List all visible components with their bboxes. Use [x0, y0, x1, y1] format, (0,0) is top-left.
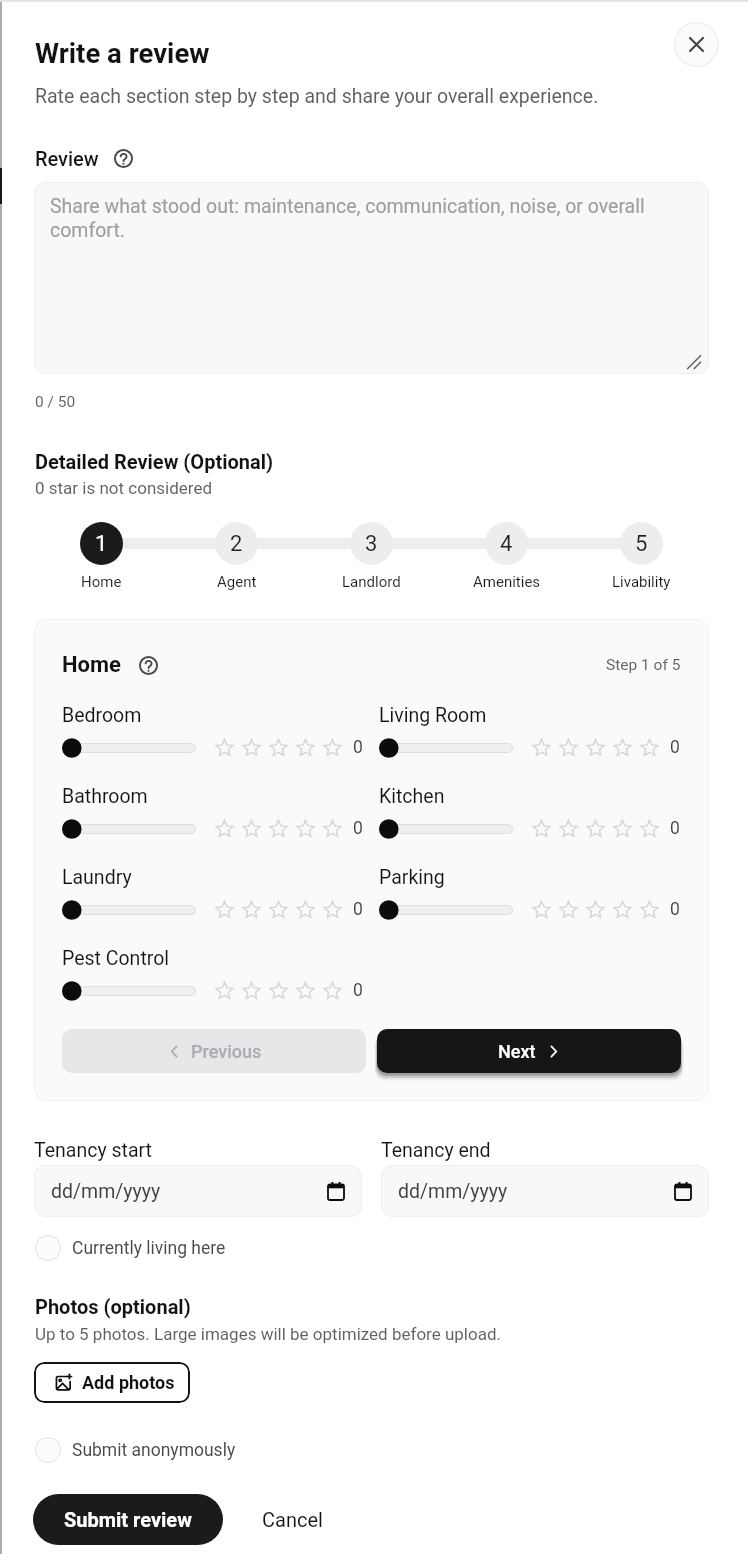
button[interactable]: Rate 1 stars [215, 900, 234, 919]
button[interactable]: Rate 2 stars [242, 819, 261, 838]
button[interactable]: Rate 1 stars [215, 738, 234, 757]
staticText: 0 [670, 737, 680, 758]
button[interactable]: Cancel [246, 1496, 339, 1543]
button[interactable]: Rate 3 stars [269, 738, 288, 757]
staticText: Agent [217, 573, 257, 591]
staticText: Previous [191, 1041, 262, 1062]
other: Pick date [674, 1182, 692, 1200]
button[interactable]: 3 [304, 522, 439, 591]
button[interactable]: Rate 4 stars [296, 738, 315, 757]
button[interactable]: Add photos [34, 1362, 190, 1403]
other: Pick date [327, 1182, 345, 1200]
button[interactable]: Rating slider [62, 819, 196, 839]
button[interactable]: Rating slider [379, 900, 513, 920]
button[interactable]: dd/mm/yyyy [381, 1165, 709, 1217]
button[interactable]: Next [377, 1029, 681, 1073]
button[interactable]: Rate 2 stars [559, 900, 578, 919]
button[interactable]: Rate 3 stars [586, 819, 605, 838]
staticText: 1 [95, 531, 108, 557]
staticText: Up to 5 photos. Large images will be opt… [35, 1324, 501, 1344]
button[interactable]: Rate 4 stars [296, 900, 315, 919]
button[interactable]: Rating slider [379, 738, 513, 758]
button[interactable]: Rate 1 stars [215, 981, 234, 1000]
staticText: Livability [612, 573, 671, 591]
staticText: Tenancy start [34, 1139, 152, 1162]
button[interactable]: Rate 5 stars [640, 900, 659, 919]
staticText: 2 [230, 531, 243, 557]
button[interactable]: Rate 2 stars [559, 819, 578, 838]
staticText: Home [62, 652, 121, 678]
staticText: Step 1 of 5 [606, 656, 681, 674]
staticText: Amenities [473, 573, 541, 591]
staticText: Review [35, 147, 99, 170]
button[interactable]: Rate 2 stars [242, 981, 261, 1000]
staticText: Photos (optional) [35, 1295, 191, 1318]
button[interactable]: Rate 5 stars [323, 819, 342, 838]
button[interactable]: Rate 1 stars [532, 900, 551, 919]
staticText: 0 [670, 818, 680, 839]
button[interactable]: Rate 4 stars [613, 900, 632, 919]
button[interactable]: dd/mm/yyyy [34, 1165, 362, 1217]
staticText: Add photos [82, 1372, 175, 1393]
staticText: 0 [353, 980, 363, 1001]
button[interactable]: Rate 5 stars [640, 738, 659, 757]
button[interactable]: Rate 5 stars [323, 738, 342, 757]
staticText: 0 [353, 737, 363, 758]
button[interactable]: 4 [439, 522, 574, 591]
button[interactable]: 2 [169, 522, 304, 591]
staticText: Submit review [64, 1508, 192, 1531]
button[interactable]: Rating slider [62, 981, 196, 1001]
staticText: 3 [365, 531, 378, 557]
button[interactable]: Rate 3 stars [269, 819, 288, 838]
button[interactable]: Rate 1 stars [532, 819, 551, 838]
button[interactable]: Rating slider [62, 900, 196, 920]
button[interactable]: Close [674, 22, 719, 67]
staticText: 0 star is not considered [35, 478, 213, 498]
button[interactable]: Rate 3 stars [269, 900, 288, 919]
button[interactable]: Rate 2 stars [559, 738, 578, 757]
staticText: dd/mm/yyyy [51, 1180, 161, 1203]
button[interactable]: Rate 4 stars [296, 819, 315, 838]
button[interactable]: Rate 3 stars [586, 900, 605, 919]
staticText: 4 [500, 531, 513, 557]
staticText: 0 [670, 899, 680, 920]
staticText: Landlord [342, 573, 401, 591]
staticText: Pest Control [62, 947, 170, 970]
staticText: Laundry [62, 866, 132, 889]
button[interactable]: Rate 1 stars [532, 738, 551, 757]
staticText: Living Room [379, 704, 487, 727]
staticText: 0 [353, 899, 363, 920]
staticText: Bedroom [62, 704, 142, 727]
staticText: Rate each section step by step and share… [35, 85, 599, 108]
staticText: Detailed Review (Optional) [35, 450, 274, 473]
button[interactable]: Submit anonymously [35, 1437, 236, 1463]
staticText: Parking [379, 866, 445, 889]
button[interactable]: Rate 4 stars [613, 819, 632, 838]
button[interactable]: 5 [574, 522, 709, 591]
button[interactable]: Rate 5 stars [640, 819, 659, 838]
button[interactable]: Previous [62, 1029, 366, 1073]
button[interactable]: Rating slider [62, 738, 196, 758]
staticText: Write a review [35, 37, 210, 69]
button[interactable]: Rate 4 stars [296, 981, 315, 1000]
button[interactable]: Rate 5 stars [323, 900, 342, 919]
button[interactable]: 1 [34, 522, 169, 591]
button[interactable]: Rate 5 stars [323, 981, 342, 1000]
staticText: 0 [353, 818, 363, 839]
staticText: Next [498, 1041, 536, 1062]
button[interactable]: Rate 4 stars [613, 738, 632, 757]
staticText: 0 / 50 [35, 393, 76, 411]
button[interactable]: Share what stood out: maintenance, commu… [34, 182, 709, 374]
staticText: Kitchen [379, 785, 445, 808]
button[interactable]: Submit review [33, 1494, 223, 1545]
button[interactable]: Rate 3 stars [269, 981, 288, 1000]
button[interactable]: Rate 1 stars [215, 819, 234, 838]
button[interactable]: Rate 2 stars [242, 738, 261, 757]
staticText: Home [81, 573, 122, 591]
button[interactable]: Rate 2 stars [242, 900, 261, 919]
button[interactable]: Currently living here [35, 1235, 226, 1261]
staticText: Currently living here [72, 1238, 226, 1259]
button[interactable]: Rate 3 stars [586, 738, 605, 757]
staticText: 5 [635, 531, 648, 557]
button[interactable]: Rating slider [379, 819, 513, 839]
